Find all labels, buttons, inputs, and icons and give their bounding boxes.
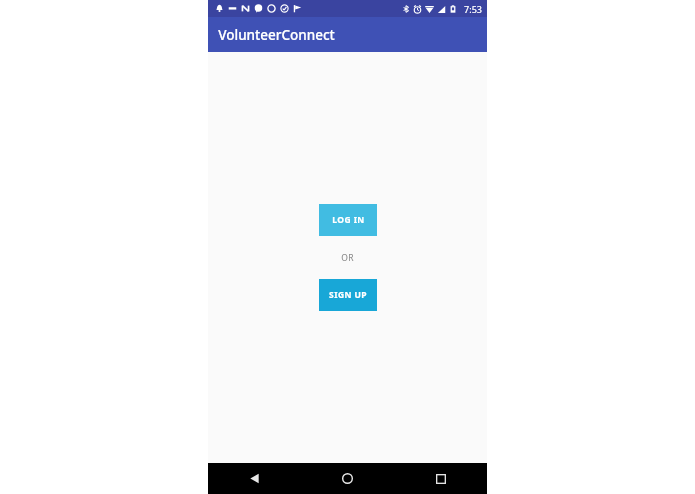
button[interactable]: Recents: [394, 463, 487, 494]
staticText: LOG IN: [332, 214, 365, 226]
staticText: SIGN UP: [329, 289, 367, 301]
staticText: VolunteerConnect: [218, 26, 335, 44]
button[interactable]: LOG IN: [319, 204, 377, 236]
staticText: 7:53: [464, 3, 482, 15]
button[interactable]: Home: [301, 463, 394, 494]
button[interactable]: SIGN UP: [319, 279, 377, 311]
staticText: OR: [341, 252, 354, 264]
button[interactable]: Back: [208, 463, 301, 494]
